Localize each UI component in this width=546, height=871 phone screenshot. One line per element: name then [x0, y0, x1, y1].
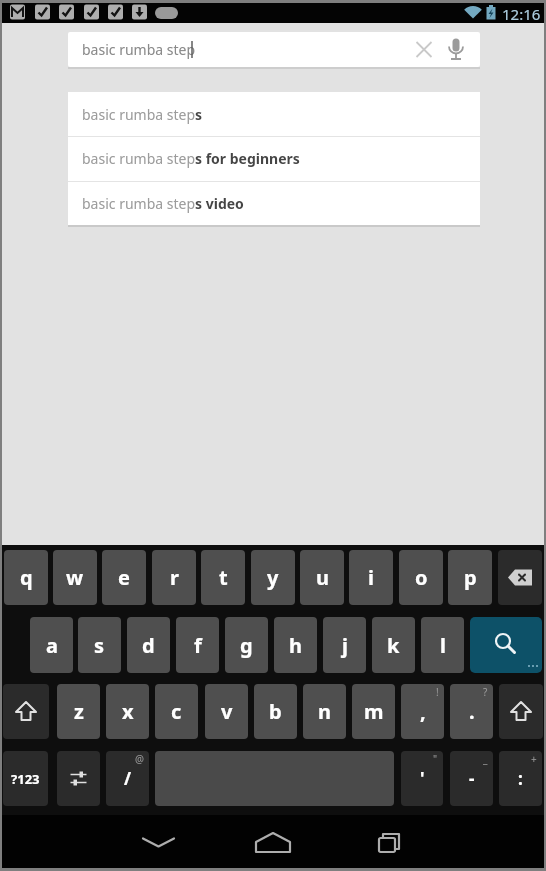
- staticText: d: [142, 632, 155, 659]
- staticText: t: [219, 564, 228, 591]
- staticText: x: [122, 698, 134, 725]
- staticText: @: [135, 752, 144, 766]
- staticText: _: [483, 752, 488, 766]
- staticText: 12:16: [502, 4, 541, 24]
- staticText: basic rumba steps for beginners: [82, 149, 300, 168]
- staticText: .: [469, 698, 475, 725]
- staticText: ": [433, 752, 438, 766]
- staticText: basic rumba steps video: [82, 194, 244, 213]
- staticText: u: [316, 564, 329, 591]
- staticText: ,: [420, 698, 426, 725]
- staticText: w: [66, 564, 84, 591]
- staticText: e: [118, 564, 130, 591]
- staticText: -: [469, 767, 475, 790]
- staticText: b: [269, 698, 282, 725]
- staticText: o: [415, 564, 428, 591]
- staticText: c: [171, 698, 182, 725]
- staticText: h: [289, 632, 302, 659]
- staticText: v: [221, 698, 233, 725]
- staticText: r: [170, 564, 179, 591]
- staticText: n: [318, 698, 331, 725]
- staticText: j: [342, 632, 348, 659]
- staticText: ?: [483, 685, 488, 699]
- staticText: g: [240, 632, 253, 659]
- staticText: q: [20, 564, 33, 591]
- staticText: m: [364, 698, 384, 725]
- staticText: f: [194, 632, 202, 659]
- staticText: k: [387, 632, 400, 659]
- staticText: basic rumba step: [82, 40, 196, 59]
- staticText: ': [420, 767, 425, 790]
- staticText: a: [46, 632, 58, 659]
- staticText: ?123: [11, 770, 40, 788]
- staticText: s: [94, 632, 105, 659]
- staticText: z: [74, 698, 84, 725]
- staticText: p: [464, 564, 477, 591]
- staticText: i: [368, 564, 374, 591]
- staticText: y: [267, 564, 279, 591]
- staticText: :: [518, 767, 523, 790]
- staticText: basic rumba steps: [82, 105, 203, 124]
- staticText: /: [124, 767, 132, 790]
- staticText: +: [531, 752, 537, 766]
- staticText: !: [436, 685, 439, 699]
- staticText: l: [440, 632, 446, 659]
